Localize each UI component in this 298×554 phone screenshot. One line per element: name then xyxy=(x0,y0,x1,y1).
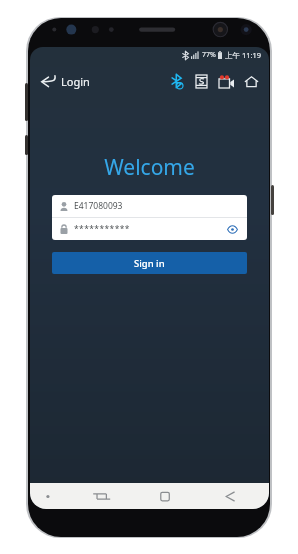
button[interactable]: *********** xyxy=(52,218,247,240)
staticText: E417080093 xyxy=(74,200,123,212)
staticText: 上午 11:19 xyxy=(225,50,262,60)
button[interactable]: Show password xyxy=(226,223,239,236)
staticText: Welcome xyxy=(30,153,269,182)
staticText: *********** xyxy=(74,223,130,235)
other: Back xyxy=(40,73,57,90)
button[interactable]: Home xyxy=(241,71,261,91)
button[interactable]: Back xyxy=(39,70,91,93)
button[interactable]: E417080093 xyxy=(52,195,247,217)
staticText: 77% xyxy=(202,50,216,60)
button[interactable]: Video xyxy=(216,71,236,91)
staticText: Sign in xyxy=(134,257,165,270)
button[interactable]: Document xyxy=(191,71,211,91)
button[interactable]: Bluetooth xyxy=(166,71,186,91)
staticText: Login xyxy=(61,74,90,89)
button[interactable]: Sign in xyxy=(52,252,247,274)
